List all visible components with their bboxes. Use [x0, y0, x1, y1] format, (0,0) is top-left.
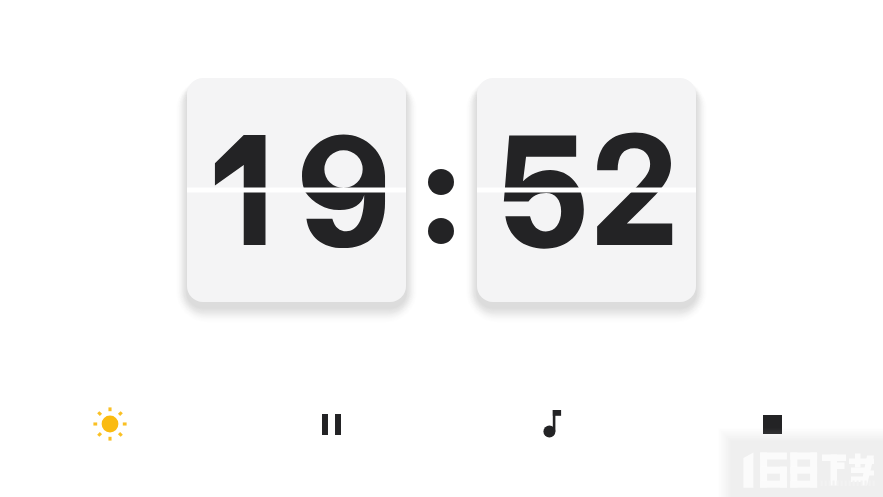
button[interactable]: Brightness: [86, 400, 134, 448]
button[interactable]: Stop: [748, 400, 796, 448]
button[interactable]: Pause: [307, 400, 355, 448]
button[interactable]: Music: [528, 400, 576, 448]
